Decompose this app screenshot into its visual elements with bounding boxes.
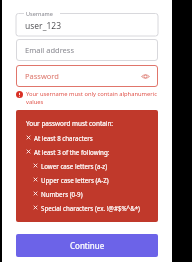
button[interactable]: Password [16, 65, 158, 87]
staticText: Password [25, 71, 59, 81]
button[interactable]: Continue [16, 234, 158, 257]
staticText: Upper case letters (A-Z) [41, 176, 109, 184]
button[interactable]: Show password [139, 70, 152, 83]
staticText: At least 3 of the following: [34, 148, 110, 156]
staticText: user_123 [25, 20, 61, 32]
staticText: Special characters (ex. !@#$%^&*) [41, 204, 140, 212]
button[interactable]: Username [16, 10, 158, 36]
staticText: Your username must only contain alphanum… [26, 90, 158, 106]
staticText: Email address [25, 45, 75, 55]
staticText: Continue [70, 240, 105, 251]
button[interactable]: Email address [16, 39, 158, 61]
staticText: Numbers (0-9) [41, 190, 83, 198]
staticText: At least 8 characters [34, 134, 93, 142]
staticText: Username [26, 10, 53, 17]
staticText: Your password must contain: [26, 119, 114, 128]
staticText: Lower case letters (a-z) [41, 162, 108, 170]
